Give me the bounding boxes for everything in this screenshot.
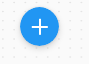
- button[interactable]: Add: [20, 7, 59, 46]
